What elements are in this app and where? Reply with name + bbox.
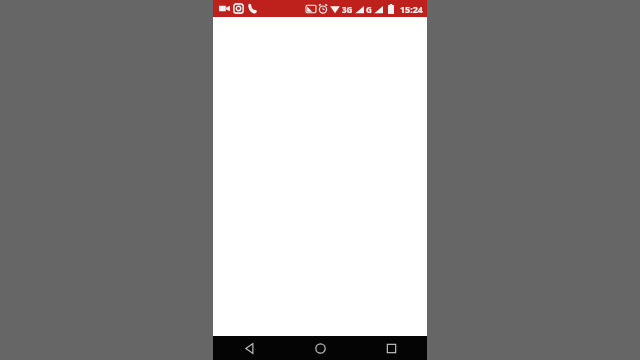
staticText: 3G: [342, 4, 353, 15]
button[interactable]: Home: [285, 336, 356, 360]
button[interactable]: Recent apps: [356, 336, 427, 360]
button[interactable]: Back: [213, 336, 285, 360]
staticText: G: [366, 4, 372, 15]
staticText: 15:24: [399, 3, 423, 15]
